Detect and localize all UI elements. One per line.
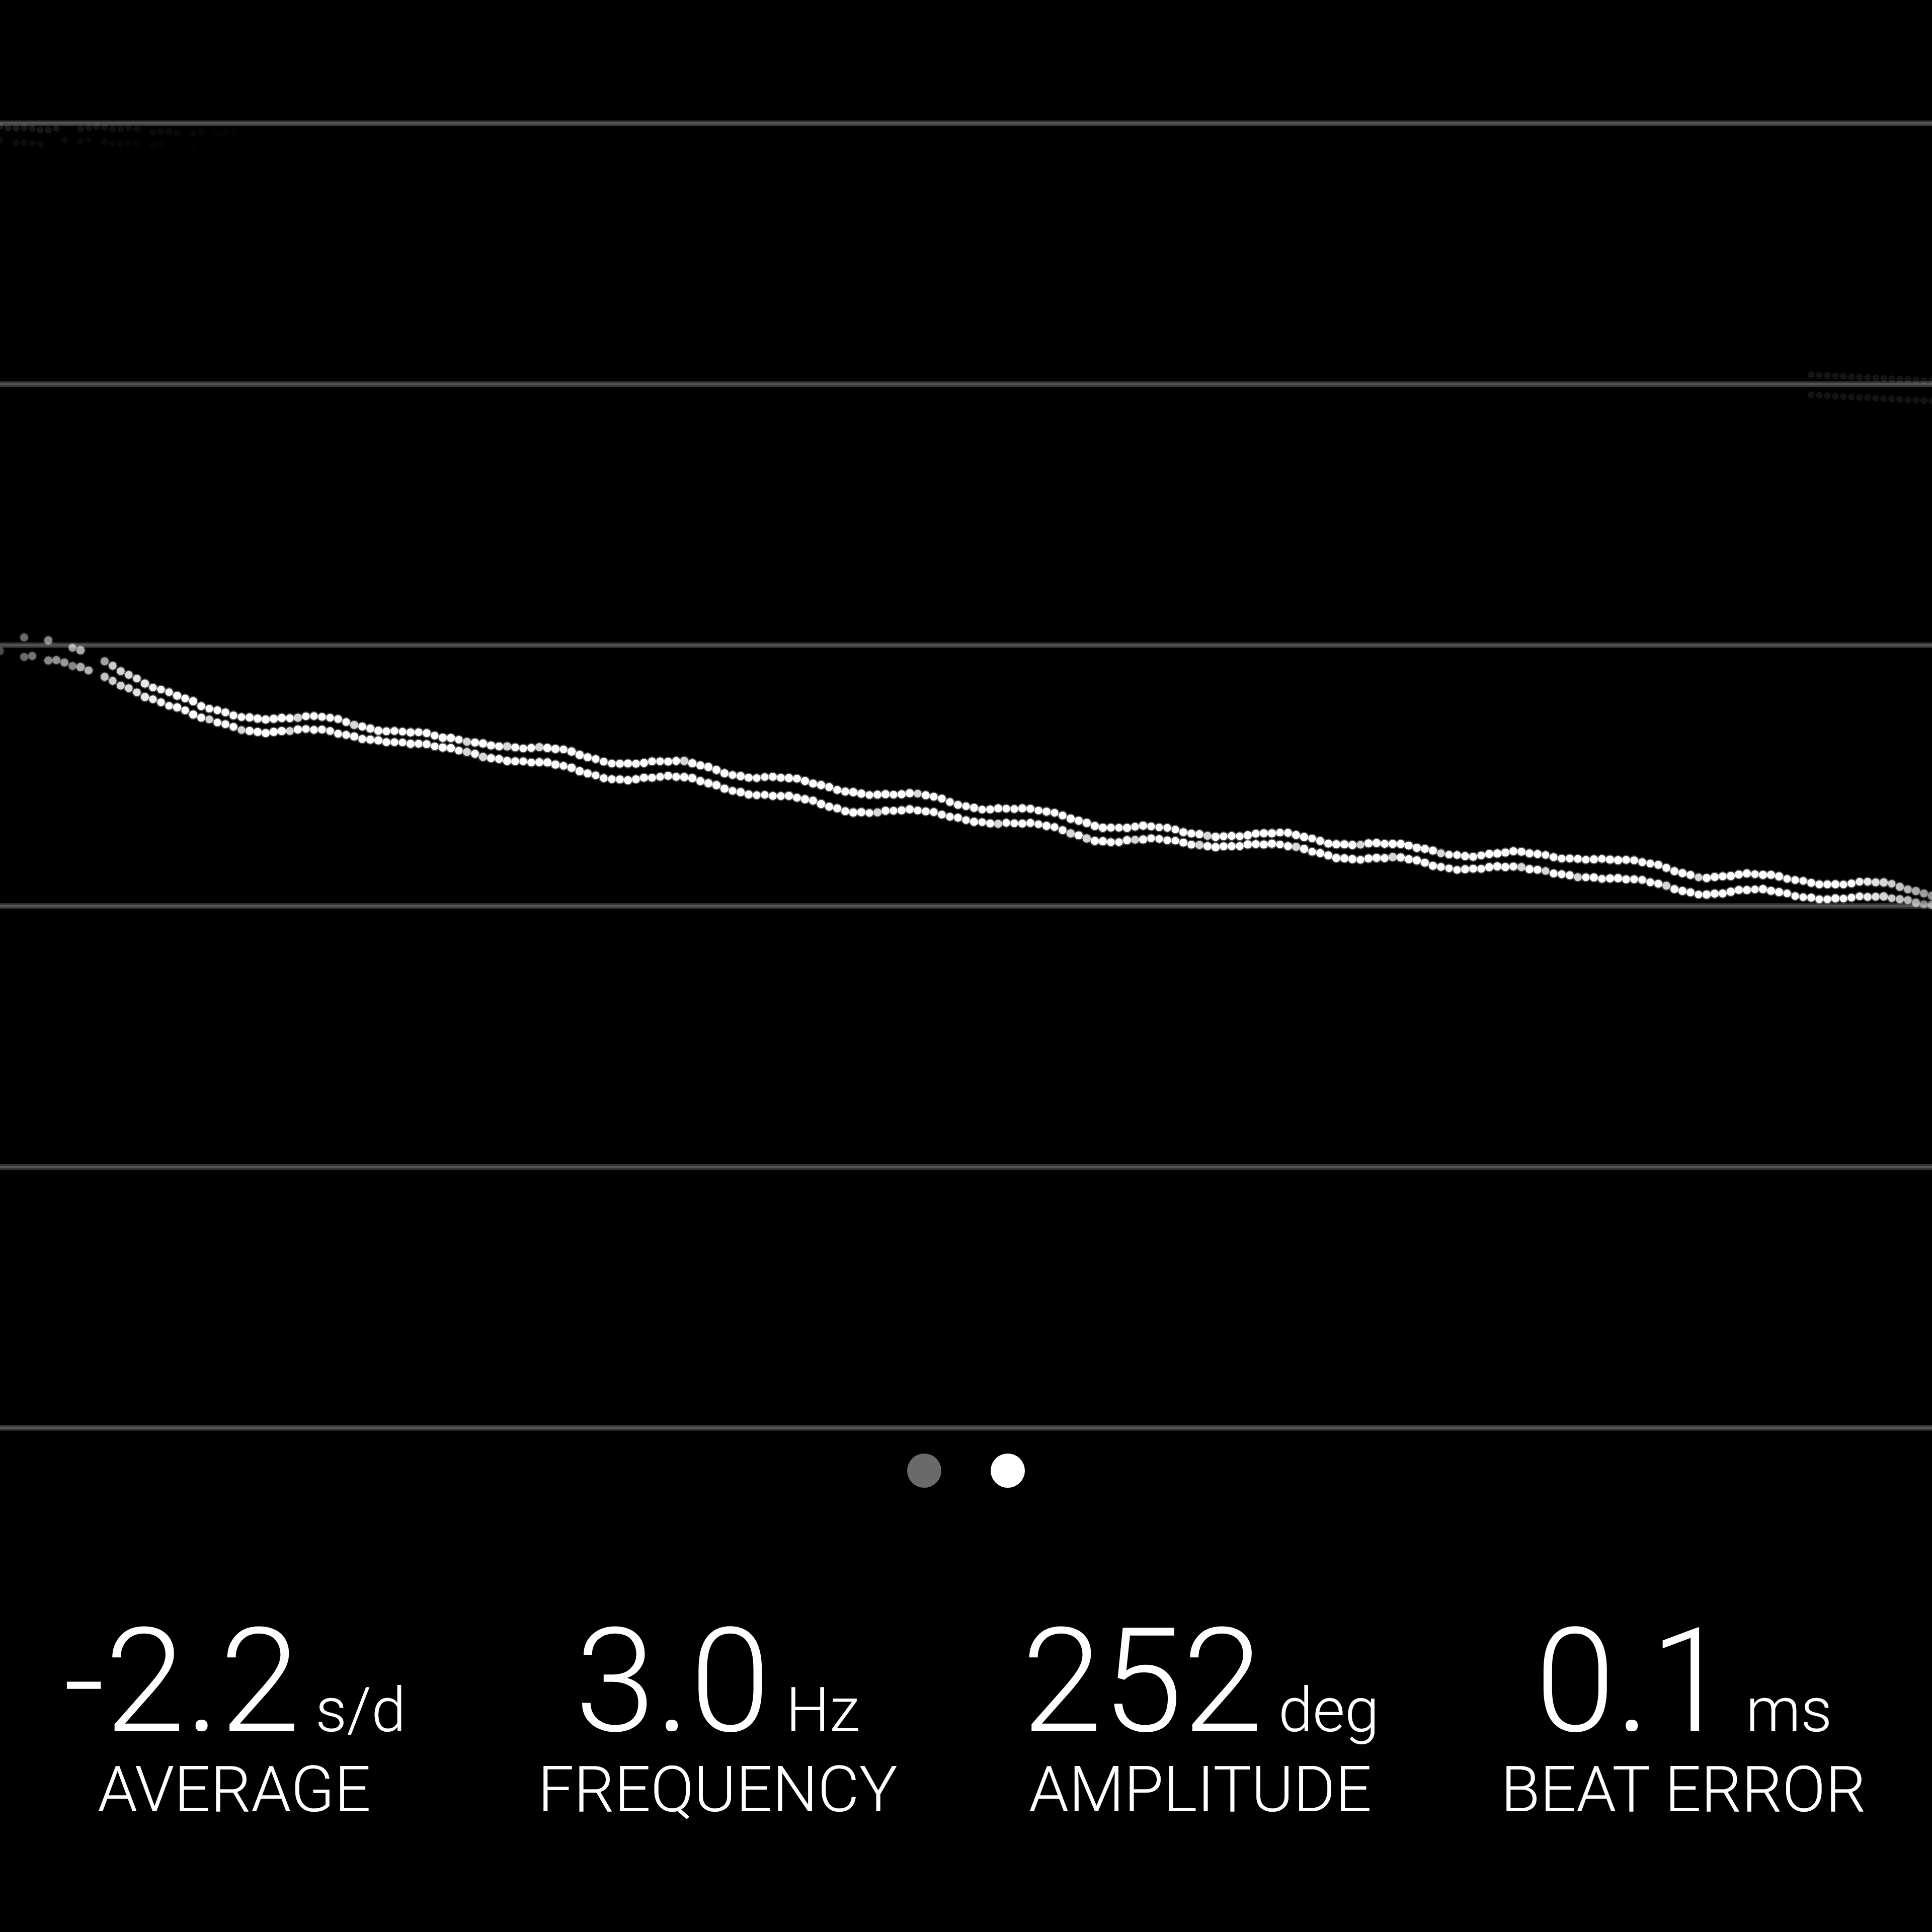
- button[interactable]: [901, 1447, 948, 1494]
- staticText: 3.0: [575, 1596, 771, 1766]
- staticText: Hz: [786, 1674, 860, 1746]
- staticText: 252: [1022, 1596, 1263, 1766]
- staticText: 0.1: [1535, 1596, 1731, 1766]
- staticText: FREQUENCY: [538, 1752, 898, 1827]
- staticText: BEAT ERROR: [1501, 1752, 1867, 1827]
- staticText: -2.2: [63, 1596, 300, 1766]
- staticText: ms: [1746, 1674, 1832, 1746]
- staticText: s/d: [315, 1674, 406, 1746]
- staticText: AVERAGE: [98, 1752, 371, 1827]
- button[interactable]: [948, 1447, 995, 1494]
- staticText: deg: [1278, 1674, 1380, 1746]
- staticText: AMPLITUDE: [1029, 1752, 1372, 1827]
